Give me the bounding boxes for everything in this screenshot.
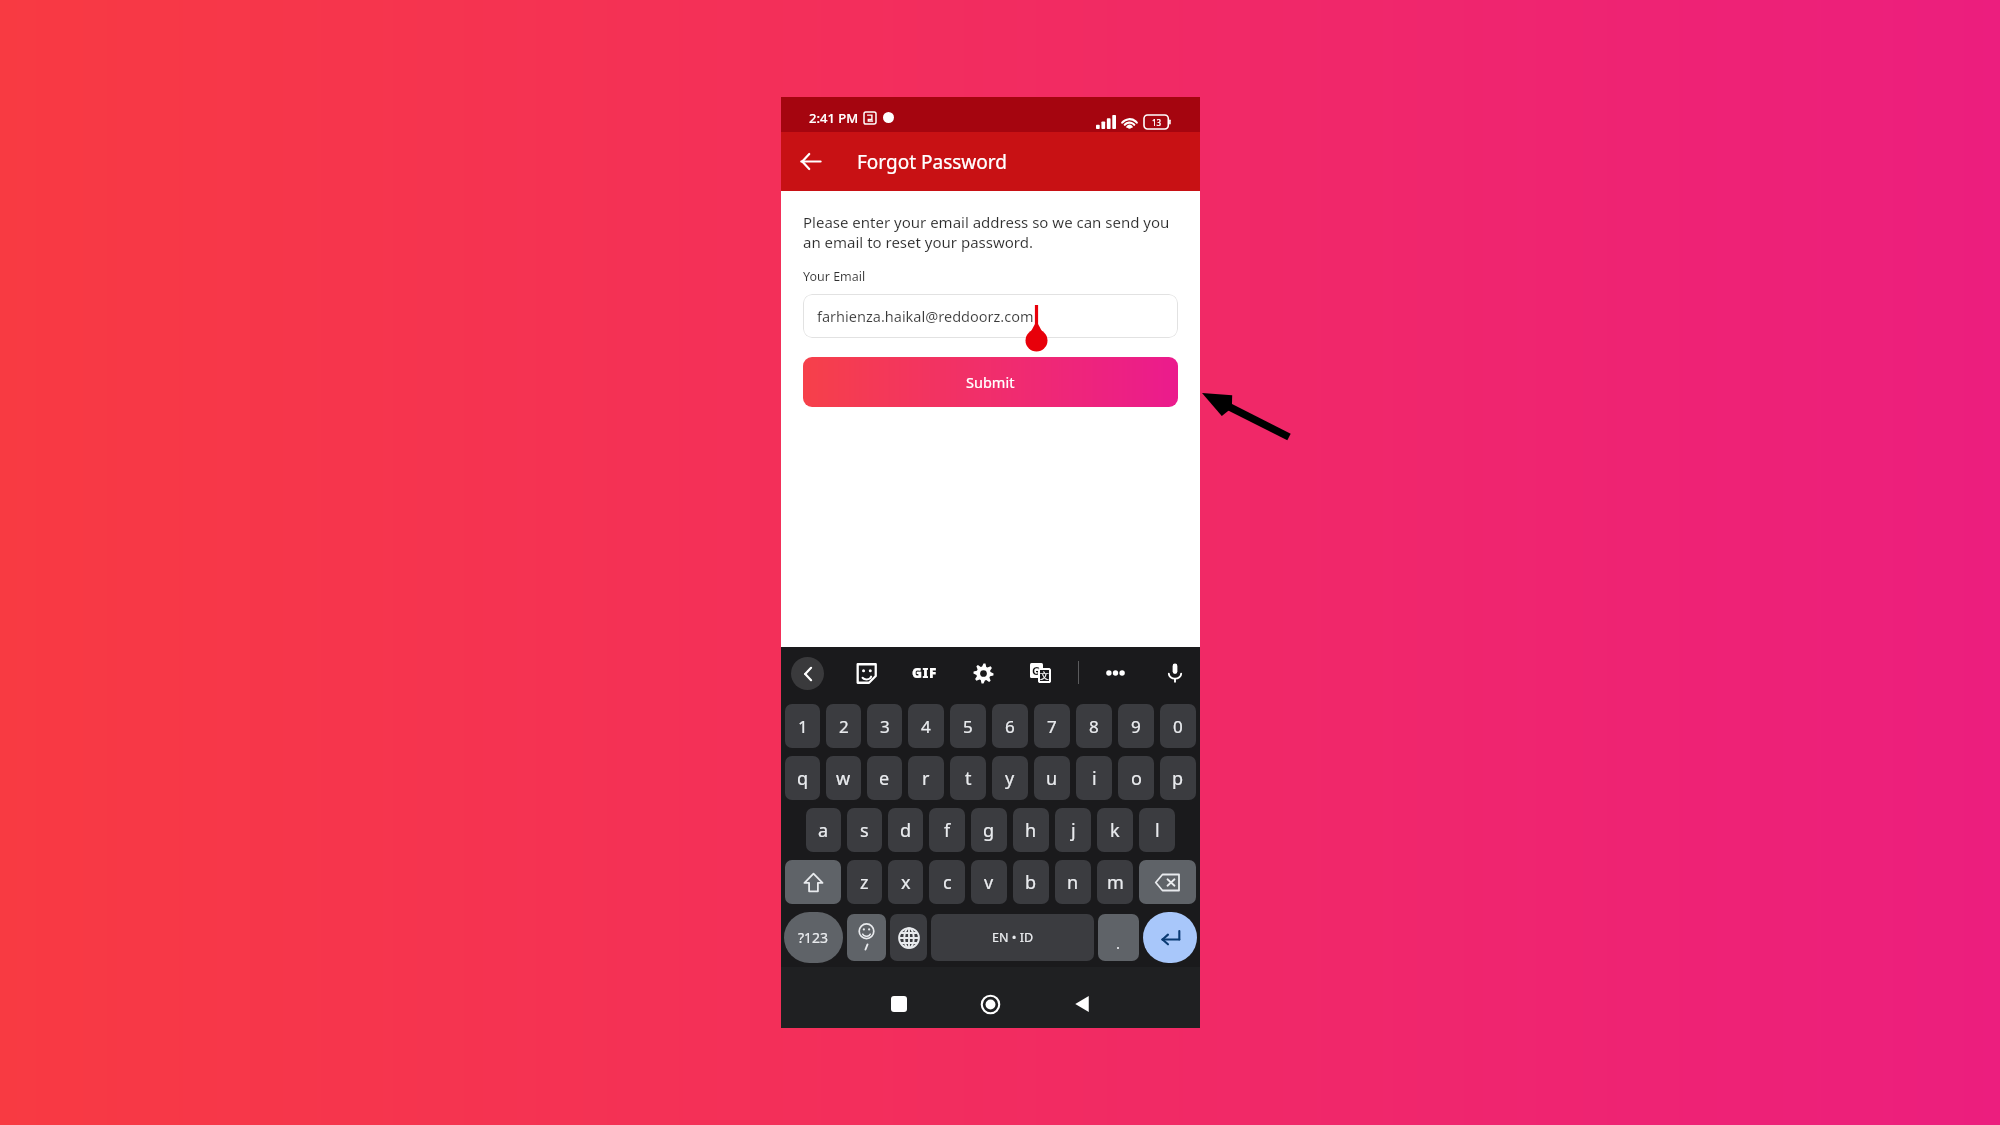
- button[interactable]: y: [992, 756, 1028, 800]
- button[interactable]: s: [847, 808, 882, 852]
- staticText: 6: [1005, 715, 1015, 738]
- button[interactable]: Backspace: [1139, 860, 1196, 904]
- button[interactable]: 9: [1118, 704, 1154, 748]
- staticText: z: [860, 870, 869, 895]
- staticText: i: [1092, 766, 1097, 791]
- staticText: x: [901, 870, 911, 895]
- staticText: a: [818, 818, 829, 843]
- staticText: 7: [1047, 715, 1057, 738]
- staticText: k: [1110, 818, 1120, 843]
- staticText: t: [965, 766, 972, 791]
- staticText: y: [1005, 766, 1015, 791]
- button[interactable]: q: [785, 756, 820, 800]
- button[interactable]: x: [888, 860, 923, 904]
- button[interactable]: f: [929, 808, 965, 852]
- staticText: GIF: [912, 664, 937, 682]
- button[interactable]: l: [1139, 808, 1175, 852]
- staticText: Your Email: [803, 268, 866, 285]
- button[interactable]: o: [1118, 756, 1154, 800]
- button[interactable]: Recents: [873, 978, 925, 1030]
- button[interactable]: GIF: [906, 655, 942, 691]
- button[interactable]: Home: [964, 978, 1016, 1030]
- button[interactable]: Emoji: [847, 914, 886, 961]
- button[interactable]: Back: [1056, 978, 1108, 1030]
- staticText: b: [1025, 870, 1037, 895]
- button[interactable]: 6: [992, 704, 1028, 748]
- button[interactable]: 2: [826, 704, 861, 748]
- button[interactable]: 7: [1034, 704, 1070, 748]
- button[interactable]: 1: [785, 704, 820, 748]
- button[interactable]: b: [1013, 860, 1049, 904]
- staticText: p: [1172, 766, 1184, 791]
- button[interactable]: Settings: [965, 655, 1001, 691]
- button[interactable]: t: [950, 756, 986, 800]
- button[interactable]: c: [929, 860, 965, 904]
- button[interactable]: m: [1097, 860, 1133, 904]
- staticText: v: [984, 870, 994, 895]
- staticText: q: [797, 766, 809, 791]
- staticText: Forgot Password: [857, 149, 1007, 175]
- button[interactable]: Enter: [1143, 912, 1197, 963]
- button[interactable]: 8: [1076, 704, 1112, 748]
- button[interactable]: j: [1055, 808, 1091, 852]
- button[interactable]: Shift: [785, 860, 841, 904]
- staticText: 0: [1173, 715, 1183, 738]
- button[interactable]: 0: [1160, 704, 1196, 748]
- button[interactable]: r: [908, 756, 944, 800]
- staticText: 文: [1040, 670, 1049, 681]
- button[interactable]: .: [1098, 914, 1139, 961]
- button[interactable]: n: [1055, 860, 1091, 904]
- staticText: s: [860, 818, 869, 843]
- button[interactable]: w: [826, 756, 861, 800]
- button[interactable]: 3: [867, 704, 902, 748]
- button[interactable]: More options: [1097, 655, 1133, 691]
- staticText: h: [1025, 818, 1037, 843]
- staticText: 5: [963, 715, 973, 738]
- button[interactable]: 5: [950, 704, 986, 748]
- staticText: c: [943, 870, 952, 895]
- button[interactable]: farhienza.haikal@reddoorz.com: [803, 294, 1178, 338]
- staticText: Submit: [966, 372, 1015, 392]
- staticText: n: [1067, 870, 1079, 895]
- staticText: .: [1116, 933, 1121, 953]
- staticText: 1: [798, 715, 808, 738]
- button[interactable]: k: [1097, 808, 1133, 852]
- button[interactable]: e: [867, 756, 902, 800]
- staticText: e: [879, 766, 890, 791]
- staticText: w: [836, 766, 851, 791]
- button[interactable]: a: [806, 808, 841, 852]
- button[interactable]: h: [1013, 808, 1049, 852]
- button[interactable]: Change language: [890, 914, 927, 961]
- button[interactable]: Submit: [803, 357, 1178, 407]
- staticText: r: [922, 766, 930, 791]
- staticText: j: [1071, 818, 1076, 843]
- staticText: u: [1046, 766, 1058, 791]
- staticText: m: [1107, 870, 1124, 895]
- staticText: 13: [1152, 117, 1162, 128]
- staticText: farhienza.haikal@reddoorz.com: [817, 306, 1034, 326]
- staticText: EN • ID: [992, 929, 1034, 946]
- button[interactable]: ?123: [784, 912, 843, 963]
- staticText: ?123: [798, 928, 829, 947]
- button[interactable]: Translate: [1022, 655, 1058, 691]
- button[interactable]: Hide toolbar: [791, 657, 824, 690]
- button[interactable]: v: [971, 860, 1007, 904]
- staticText: 2: [839, 715, 849, 738]
- staticText: o: [1131, 766, 1142, 791]
- button[interactable]: Stickers: [848, 655, 884, 691]
- staticText: g: [983, 818, 995, 843]
- button[interactable]: Back: [781, 132, 839, 191]
- staticText: 9: [1131, 715, 1141, 738]
- button[interactable]: g: [971, 808, 1007, 852]
- button[interactable]: 4: [908, 704, 944, 748]
- staticText: f: [944, 818, 951, 843]
- button[interactable]: EN • ID: [931, 914, 1094, 961]
- staticText: d: [900, 818, 912, 843]
- staticText: 8: [1089, 715, 1099, 738]
- button[interactable]: Voice input: [1157, 655, 1193, 691]
- button[interactable]: p: [1160, 756, 1196, 800]
- button[interactable]: u: [1034, 756, 1070, 800]
- button[interactable]: d: [888, 808, 923, 852]
- button[interactable]: z: [847, 860, 882, 904]
- button[interactable]: i: [1076, 756, 1112, 800]
